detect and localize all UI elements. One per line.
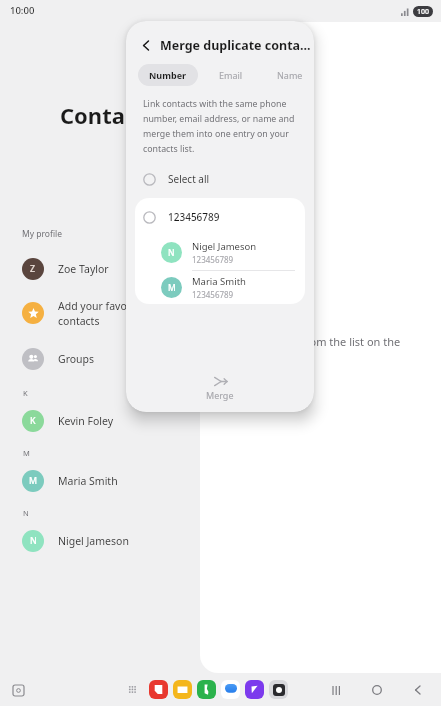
button[interactable]: M [0,464,441,498]
button[interactable]: Z [0,252,441,286]
staticText: Contacts [60,100,157,130]
button[interactable]: Apps [124,681,142,699]
staticText: Email [219,69,243,81]
staticText: Maria Smith [58,474,118,488]
staticText: M [23,448,30,458]
button[interactable]: Merge [126,366,314,412]
staticText: My profile [22,228,63,240]
staticText: 100 [417,7,430,17]
staticText: Select all [168,172,210,186]
button[interactable]: 123456789 [135,206,305,228]
staticText: N [30,535,37,547]
staticText: M [168,282,176,293]
staticText: Link contacts with the same phone number… [143,98,295,155]
staticText: 10:00 [10,4,35,17]
staticText: Kevin Foley [58,414,114,428]
staticText: Add your favourite contacts [58,299,151,328]
button[interactable]: Messages [221,680,240,699]
staticText: Nigel Jameson [192,240,257,253]
staticText: 123456789 [168,210,220,224]
button[interactable]: K [0,404,441,438]
staticText: K [30,415,36,427]
staticText: N [168,247,175,258]
staticText: 123456789 [192,254,234,265]
staticText: Groups [58,352,95,366]
button[interactable]: Recents [325,679,347,701]
button[interactable]: N [0,524,441,558]
staticText: Select a contact from the list on the le… [218,334,401,365]
button[interactable]: Internet [245,680,264,699]
staticText: Z [30,263,36,275]
button[interactable]: Email [208,64,254,86]
button[interactable]: Groups [0,342,441,376]
button[interactable]: N [135,234,305,270]
staticText: K [23,388,28,398]
button[interactable]: M [135,271,305,304]
staticText: N [23,508,29,518]
button[interactable]: Back [136,35,156,55]
button[interactable]: Back [407,679,429,701]
staticText: Number [149,69,187,81]
staticText: Name [277,69,303,81]
button[interactable]: Select all [126,167,314,191]
staticText: 123456789 [192,289,234,300]
button[interactable]: Samsung Notes [149,680,168,699]
button[interactable]: Number [138,64,198,86]
staticText: Nigel Jameson [58,534,129,548]
button[interactable]: Home [366,679,388,701]
button[interactable]: Camera [269,680,288,699]
staticText: Merge [206,389,234,401]
staticText: Zoe Taylor [58,262,109,276]
button[interactable]: Name [266,64,314,86]
staticText: Maria Smith [192,275,246,288]
button[interactable]: My Files [173,680,192,699]
staticText: M [29,475,38,487]
button[interactable]: Add your favourite contacts [0,294,441,332]
staticText: Merge duplicate conta... [160,37,311,54]
button[interactable]: Phone [197,680,216,699]
button[interactable]: Recent apps [8,680,28,700]
